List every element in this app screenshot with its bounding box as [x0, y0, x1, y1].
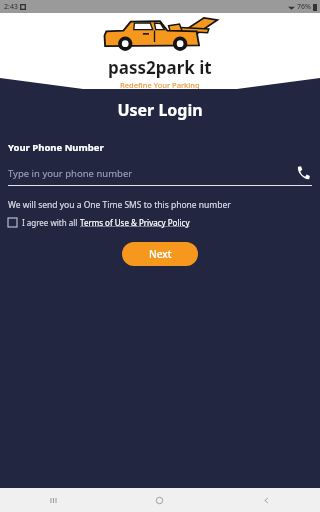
other: Phone	[294, 164, 312, 182]
other: Agree checkbox	[8, 218, 17, 227]
staticText: Your Phone Number	[8, 141, 104, 154]
staticText: I agree with all	[22, 217, 80, 228]
staticText: We will send you a One Time SMS to this …	[8, 199, 231, 211]
staticText: 76%	[297, 2, 311, 12]
button[interactable]: Terms of Use & Privacy Policy	[80, 217, 190, 228]
staticText: Next	[149, 247, 172, 261]
button[interactable]: Recents	[0, 488, 106, 512]
staticText: 2:43	[4, 2, 18, 12]
staticText: pass2park it	[108, 56, 212, 79]
button[interactable]: Type in your phone number	[8, 164, 312, 182]
button[interactable]: Agree checkbox	[8, 217, 190, 228]
staticText: Redefine Your Parking	[120, 80, 200, 89]
button[interactable]: Next	[122, 242, 198, 266]
button[interactable]: Home	[106, 488, 213, 512]
staticText: Type in your phone number	[8, 167, 294, 180]
staticText: User Login	[0, 99, 320, 121]
